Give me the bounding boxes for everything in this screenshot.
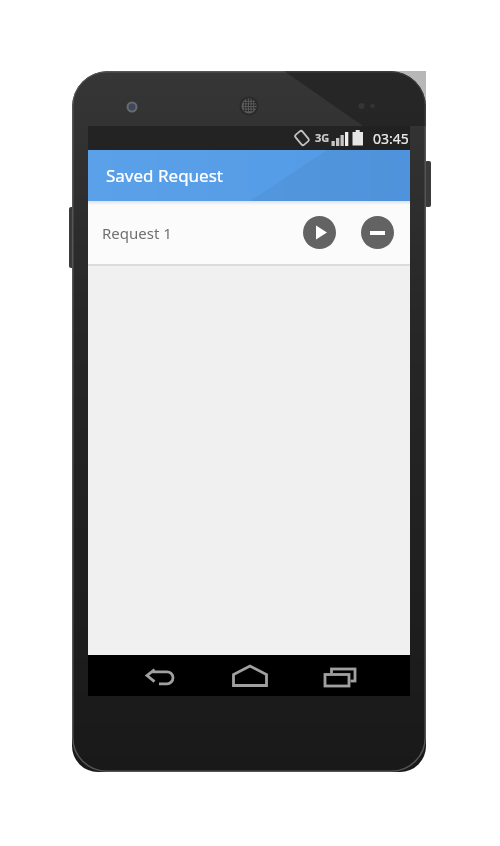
button[interactable] [303, 655, 410, 696]
staticText: 3G [315, 130, 330, 145]
button[interactable] [88, 655, 196, 696]
button[interactable] [361, 216, 394, 249]
staticText: Saved Request [106, 164, 223, 187]
button[interactable]: Request 1 [88, 201, 410, 264]
button[interactable] [196, 655, 303, 696]
staticText: 03:45 [373, 129, 409, 148]
staticText: Request 1 [102, 223, 172, 243]
button[interactable] [303, 216, 336, 249]
